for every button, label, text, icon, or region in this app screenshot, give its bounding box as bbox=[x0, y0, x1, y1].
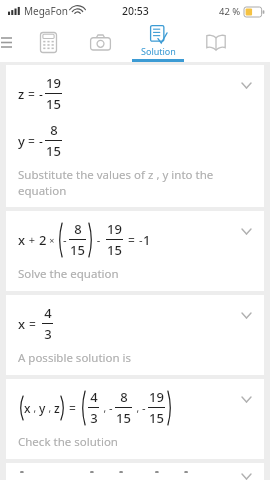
button[interactable]: Calculator bbox=[22, 22, 74, 62]
staticText: x bbox=[18, 315, 26, 333]
staticText: + bbox=[26, 232, 39, 247]
staticText: , bbox=[134, 401, 142, 415]
button[interactable]: Expand step bbox=[236, 305, 256, 325]
staticText: z bbox=[54, 400, 60, 416]
staticText: - bbox=[63, 232, 67, 247]
staticText: = bbox=[26, 316, 40, 332]
staticText: = bbox=[125, 232, 139, 248]
staticText: 42 % bbox=[219, 5, 241, 18]
button[interactable]: Expand step bbox=[236, 75, 256, 95]
staticText: 15 bbox=[107, 241, 122, 259]
staticText: Solve the equation bbox=[18, 266, 119, 282]
staticText: x bbox=[18, 231, 26, 249]
button[interactable]: Dictionary bbox=[190, 22, 242, 62]
staticText: Check the solution bbox=[18, 434, 118, 450]
button[interactable]: x bbox=[6, 211, 264, 291]
staticText: 15 bbox=[46, 142, 61, 160]
staticText: , bbox=[46, 401, 54, 415]
staticText: - bbox=[139, 232, 143, 247]
staticText: 15 bbox=[46, 95, 61, 113]
staticText: , bbox=[101, 401, 109, 415]
button[interactable]: x bbox=[6, 295, 264, 375]
staticText: = bbox=[66, 400, 80, 416]
staticText: 4 bbox=[44, 304, 52, 322]
button[interactable]: x bbox=[6, 379, 264, 459]
staticText: - bbox=[39, 133, 43, 149]
staticText: × bbox=[47, 234, 57, 246]
staticText: 8 bbox=[120, 388, 128, 406]
staticText: 1 bbox=[143, 231, 151, 249]
staticText: 3 bbox=[90, 409, 98, 427]
staticText: 19 bbox=[46, 74, 61, 92]
button[interactable]: Expand step bbox=[236, 473, 256, 480]
staticText: - bbox=[109, 400, 113, 415]
staticText: Solution bbox=[141, 45, 176, 57]
staticText: 4 bbox=[90, 388, 98, 406]
staticText: z bbox=[18, 85, 25, 103]
button[interactable]: Solution bbox=[126, 22, 190, 62]
staticText: MegaFon bbox=[24, 4, 68, 18]
staticText: A possible solution is bbox=[18, 350, 132, 366]
staticText: 20:53 bbox=[122, 4, 149, 18]
staticText: - bbox=[142, 400, 146, 415]
staticText: 15 bbox=[70, 241, 85, 259]
staticText: - bbox=[94, 232, 104, 247]
staticText: Substitute the values of z , y into the … bbox=[18, 167, 234, 198]
staticText: 15 bbox=[116, 409, 131, 427]
staticText: x bbox=[24, 400, 31, 416]
staticText: = bbox=[25, 86, 39, 102]
staticText: 2 bbox=[39, 231, 47, 249]
staticText: 19 bbox=[107, 220, 122, 238]
staticText: 19 bbox=[149, 388, 164, 406]
staticText: 15 bbox=[149, 409, 164, 427]
staticText: 3 bbox=[44, 325, 52, 343]
button[interactable]: Expand step bbox=[236, 221, 256, 241]
staticText: y bbox=[18, 132, 25, 150]
button[interactable]: Menu bbox=[0, 22, 22, 62]
button[interactable]: z bbox=[6, 65, 264, 207]
staticText: 8 bbox=[50, 121, 58, 139]
staticText: y bbox=[39, 400, 46, 416]
button[interactable]: Expand step bbox=[236, 389, 256, 409]
staticText: - bbox=[39, 86, 43, 102]
staticText: 8 bbox=[74, 220, 82, 238]
staticText: , bbox=[31, 401, 39, 415]
button[interactable]: Camera bbox=[74, 22, 126, 62]
staticText: = bbox=[25, 133, 39, 149]
button[interactable]: 2 bbox=[6, 463, 264, 480]
